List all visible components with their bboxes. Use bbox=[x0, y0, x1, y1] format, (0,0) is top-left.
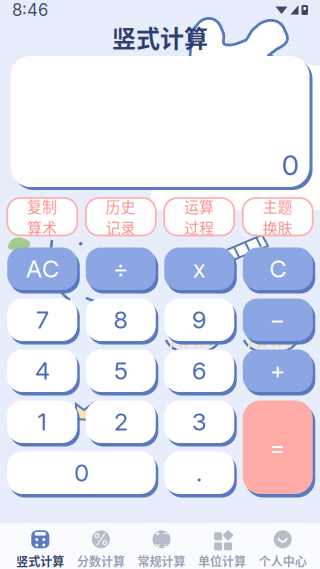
button[interactable]: C bbox=[243, 247, 313, 290]
button[interactable]: x bbox=[164, 247, 234, 290]
staticText: − bbox=[270, 305, 286, 334]
staticText: 单位计算 bbox=[198, 552, 246, 569]
staticText: 过程 bbox=[184, 217, 214, 238]
staticText: 2 bbox=[114, 407, 128, 436]
button[interactable]: % bbox=[71, 523, 131, 569]
staticText: 个人中心 bbox=[259, 552, 307, 569]
staticText: 历史 bbox=[106, 195, 136, 217]
staticText: ÷ bbox=[113, 254, 129, 283]
button[interactable]: − bbox=[243, 298, 313, 341]
button[interactable]: 8 bbox=[86, 298, 156, 341]
staticText: 分数计算 bbox=[77, 552, 125, 569]
button[interactable]: 6 bbox=[164, 349, 234, 392]
button[interactable]: 1 bbox=[7, 400, 77, 443]
staticText: x bbox=[193, 254, 206, 283]
staticText: 运算 bbox=[184, 195, 214, 217]
staticText: 1 bbox=[37, 407, 47, 436]
button[interactable]: . bbox=[164, 451, 234, 494]
staticText: AC bbox=[26, 254, 59, 283]
button[interactable]: 运算 bbox=[164, 198, 234, 235]
staticText: 5 bbox=[114, 356, 128, 385]
staticText: . bbox=[196, 458, 203, 487]
button[interactable]: 单位计算 bbox=[192, 523, 252, 569]
staticText: = bbox=[270, 433, 286, 462]
staticText: 换肤 bbox=[263, 217, 293, 238]
button[interactable]: 复制 bbox=[7, 198, 77, 235]
staticText: + bbox=[270, 356, 286, 385]
button[interactable]: 0 bbox=[7, 451, 156, 494]
staticText: 主题 bbox=[263, 195, 293, 217]
button[interactable]: 5 bbox=[86, 349, 156, 392]
button[interactable]: 4 bbox=[7, 349, 77, 392]
staticText: ÷ bbox=[162, 539, 169, 552]
staticText: 记录 bbox=[106, 217, 136, 238]
staticText: 3 bbox=[192, 407, 207, 436]
staticText: % bbox=[93, 530, 109, 549]
button[interactable]: + bbox=[243, 349, 313, 392]
button[interactable]: 7 bbox=[7, 298, 77, 341]
button[interactable]: = bbox=[243, 400, 313, 494]
button[interactable]: + bbox=[131, 523, 192, 569]
staticText: 算术 bbox=[27, 217, 57, 238]
staticText: 8 bbox=[113, 305, 128, 334]
staticText: 复制 bbox=[27, 195, 57, 217]
staticText: 4 bbox=[35, 356, 50, 385]
staticText: 7 bbox=[36, 305, 49, 334]
button[interactable]: ÷ bbox=[86, 247, 156, 290]
staticText: 竖式计算 bbox=[112, 20, 208, 54]
staticText: C bbox=[269, 254, 286, 283]
button[interactable]: 3 bbox=[164, 400, 234, 443]
staticText: 竖式计算 bbox=[16, 552, 64, 569]
staticText: + bbox=[154, 526, 161, 539]
button[interactable]: 竖式计算 bbox=[10, 523, 71, 569]
staticText: 常规计算 bbox=[137, 552, 185, 569]
staticText: − bbox=[162, 526, 169, 539]
button[interactable]: AC bbox=[7, 247, 77, 290]
staticText: 0 bbox=[281, 148, 298, 182]
staticText: 9 bbox=[192, 305, 207, 334]
button[interactable]: 历史 bbox=[86, 198, 156, 235]
staticText: 6 bbox=[192, 356, 207, 385]
button[interactable]: 主题 bbox=[243, 198, 313, 235]
staticText: 8:46 bbox=[12, 0, 48, 20]
button[interactable]: 2 bbox=[86, 400, 156, 443]
staticText: × bbox=[154, 539, 161, 552]
button[interactable]: 个人中心 bbox=[252, 523, 313, 569]
staticText: 0 bbox=[74, 458, 89, 487]
button[interactable]: 9 bbox=[164, 298, 234, 341]
